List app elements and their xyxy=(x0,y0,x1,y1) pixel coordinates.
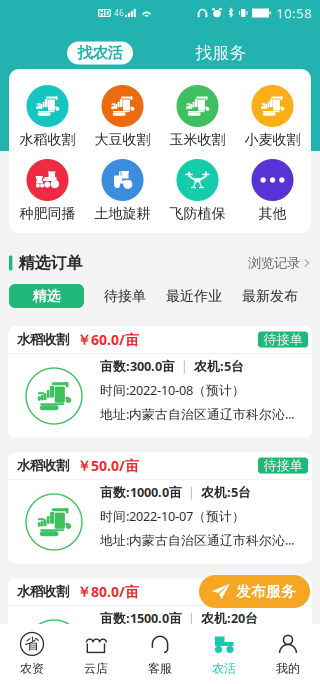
button[interactable]: 土地旋耕 xyxy=(85,159,160,220)
staticText: ￥50.0/亩 xyxy=(77,456,139,475)
staticText: 待接单 xyxy=(263,583,302,600)
staticText: 找服务 xyxy=(195,42,246,63)
staticText: 水稻收割 xyxy=(17,331,69,348)
staticText: 玉米收割 xyxy=(169,131,225,148)
button[interactable]: 浏览记录 xyxy=(248,255,310,271)
button[interactable]: 最近作业 xyxy=(166,287,222,305)
staticText: 我的 xyxy=(276,661,300,676)
staticText: 时间:2022-10-07（预计） xyxy=(100,507,245,525)
staticText: 种肥同播 xyxy=(19,205,75,222)
staticText: 水稻收割 xyxy=(17,583,69,600)
staticText: 待接单 xyxy=(263,331,302,348)
staticText: 地址:内蒙古自治区通辽市科尔沁左... xyxy=(100,405,296,423)
button[interactable]: 云店 xyxy=(64,624,128,684)
staticText: 时间:2022-10-08（预计） xyxy=(100,381,245,399)
staticText: 小麦收割 xyxy=(244,131,300,148)
staticText: ￥60.0/亩 xyxy=(77,330,139,349)
staticText: 精选订单 xyxy=(18,253,82,273)
staticText: 农机:5台 xyxy=(201,483,251,501)
staticText: 最新发布 xyxy=(242,287,298,305)
button[interactable]: 水稻收割 xyxy=(8,452,312,564)
button[interactable]: 飞防植保 xyxy=(160,159,235,220)
button[interactable]: 发布服务 xyxy=(199,575,310,608)
button[interactable]: 精选 xyxy=(9,284,84,308)
staticText: 46 xyxy=(114,8,124,18)
staticText: 亩数:1500.0亩 xyxy=(100,609,182,627)
button[interactable]: 找农活 xyxy=(67,30,133,64)
staticText: HD xyxy=(98,8,110,18)
staticText: | xyxy=(182,610,201,626)
button[interactable]: 待接单 xyxy=(104,287,146,305)
staticText: 土地旋耕 xyxy=(94,205,150,222)
staticText: 农机:20台 xyxy=(201,609,258,627)
staticText: 地址:内蒙古自治区通辽市科尔沁左... xyxy=(100,531,296,549)
staticText: 找农活 xyxy=(77,43,122,63)
button[interactable]: 最新发布 xyxy=(242,287,298,305)
button[interactable]: 种肥同播 xyxy=(10,159,85,220)
staticText: 精选 xyxy=(32,287,60,305)
staticText: 水稻收割 xyxy=(19,131,75,148)
button[interactable]: 大豆收割 xyxy=(85,85,160,146)
staticText: 农机:5台 xyxy=(194,357,244,375)
staticText: 时间:2022-10-06（预计） xyxy=(100,633,245,651)
button[interactable]: 水稻收割 xyxy=(8,326,312,438)
staticText: 亩数:1000.0亩 xyxy=(100,483,182,501)
staticText: 10:58 xyxy=(276,4,312,22)
staticText: 其他 xyxy=(258,205,286,222)
button[interactable]: 小麦收割 xyxy=(235,85,310,146)
staticText: 云店 xyxy=(84,661,108,676)
staticText: 客服 xyxy=(148,661,172,676)
staticText: 水稻收割 xyxy=(17,457,69,474)
button[interactable]: 玉米收割 xyxy=(160,85,235,146)
staticText: 飞防植保 xyxy=(169,205,225,222)
staticText: 地址:内蒙古自治区通辽市科尔沁左... xyxy=(100,657,296,675)
staticText: | xyxy=(175,358,194,374)
button[interactable]: 其他 xyxy=(235,159,310,220)
staticText: 农资 xyxy=(20,661,44,676)
staticText: 农活 xyxy=(212,661,236,676)
staticText: 发布服务 xyxy=(236,582,296,601)
staticText: 省 xyxy=(24,635,39,653)
button[interactable]: 农活 xyxy=(192,624,256,684)
staticText: | xyxy=(182,484,201,500)
staticText: 亩数:300.0亩 xyxy=(100,357,175,375)
staticText: 最近作业 xyxy=(166,287,222,305)
button[interactable]: 水稻收割 xyxy=(8,578,312,684)
button[interactable]: 找服务 xyxy=(193,30,249,64)
staticText: 浏览记录 xyxy=(248,255,300,271)
button[interactable]: 客服 xyxy=(128,624,192,684)
staticText: 大豆收割 xyxy=(94,131,150,148)
button[interactable]: 水稻收割 xyxy=(10,85,85,146)
staticText: ￥80.0/亩 xyxy=(77,582,139,601)
button[interactable]: 我的 xyxy=(256,624,320,684)
button[interactable]: 省 xyxy=(0,624,64,684)
staticText: 待接单 xyxy=(104,287,146,305)
staticText: 待接单 xyxy=(263,457,302,474)
